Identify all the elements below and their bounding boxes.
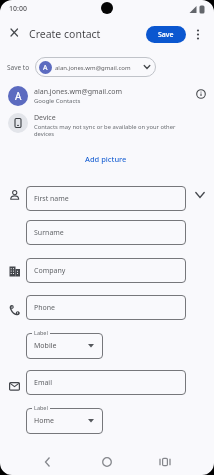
staticText: A — [15, 89, 22, 103]
button[interactable] — [6, 25, 22, 41]
button[interactable]: Device — [0, 111, 214, 139]
button[interactable] — [36, 452, 56, 472]
staticText: First name — [34, 194, 69, 204]
staticText: Mobile — [34, 341, 57, 351]
button[interactable]: Save — [146, 26, 186, 43]
staticText: Label — [34, 329, 48, 336]
button[interactable]: Email — [26, 370, 186, 395]
button[interactable]: Phone — [26, 295, 186, 320]
staticText: Email — [34, 378, 52, 388]
staticText: A — [43, 63, 48, 73]
button[interactable]: Surname — [26, 220, 186, 245]
staticText: Device — [34, 113, 56, 123]
button[interactable] — [192, 26, 204, 43]
staticText: alan.jones.wm@gmail.com — [55, 64, 131, 72]
button[interactable]: Home — [26, 408, 103, 434]
button[interactable]: First name — [26, 186, 186, 211]
staticText: Company — [34, 266, 66, 276]
staticText: Save to — [7, 63, 30, 72]
staticText: Label — [34, 404, 48, 411]
button[interactable]: A — [35, 57, 156, 77]
button[interactable] — [155, 452, 175, 472]
button[interactable]: Add picture — [85, 154, 127, 164]
staticText: Home — [34, 416, 54, 426]
staticText: 10:00 — [9, 4, 27, 14]
staticText: Create contact — [29, 27, 101, 41]
staticText: Phone — [34, 303, 56, 313]
button[interactable]: Mobile — [26, 333, 103, 359]
staticText: Surname — [34, 228, 64, 238]
button[interactable] — [97, 452, 117, 472]
staticText: Save — [158, 30, 174, 40]
button[interactable]: A — [0, 84, 214, 109]
staticText: Google Contacts — [34, 97, 81, 105]
button[interactable]: Company — [26, 258, 186, 283]
staticText: Contacts may not sync or be available on… — [34, 123, 176, 138]
staticText: alan.jones.wm@gmail.com — [34, 87, 123, 97]
